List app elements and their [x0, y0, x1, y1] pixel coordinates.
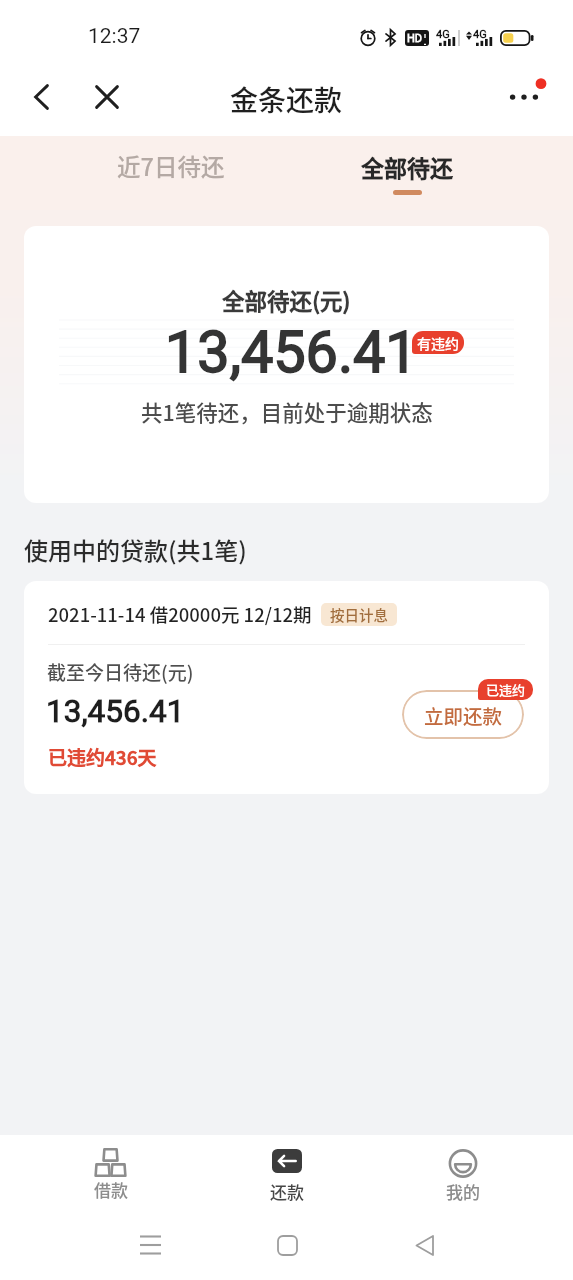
- button[interactable]: Back: [404, 1225, 444, 1265]
- staticText: 4G: [436, 28, 450, 41]
- staticText: 已违约436天: [48, 743, 157, 771]
- staticText: 借款: [94, 1177, 128, 1202]
- button[interactable]: Recents: [130, 1225, 170, 1265]
- button[interactable]: 借款: [22, 1135, 199, 1215]
- staticText: 共1笔待还，目前处于逾期状态: [141, 396, 433, 427]
- button[interactable]: 近7日待还: [57, 146, 285, 186]
- button[interactable]: More options: [500, 75, 546, 121]
- staticText: 12:37: [88, 24, 141, 49]
- staticText: 13,456.41: [165, 319, 418, 386]
- staticText: 按日计息: [330, 604, 388, 625]
- staticText: 13,456.41: [46, 693, 185, 730]
- staticText: 使用中的贷款(共1笔): [24, 532, 247, 567]
- button[interactable]: Back: [19, 75, 63, 119]
- staticText: 4G: [473, 28, 487, 41]
- button[interactable]: 我的: [375, 1135, 551, 1215]
- staticText: 金条还款: [230, 79, 343, 120]
- button[interactable]: 立即还款: [402, 690, 524, 739]
- staticText: 我的: [446, 1179, 480, 1204]
- button[interactable]: 还款: [199, 1135, 375, 1215]
- staticText: 还款: [270, 1179, 304, 1204]
- staticText: 有违约: [417, 333, 459, 353]
- button[interactable]: Home: [267, 1225, 307, 1265]
- staticText: HD: [407, 32, 423, 45]
- staticText: 立即还款: [424, 701, 503, 729]
- staticText: 已违约: [486, 680, 526, 699]
- staticText: 截至今日待还(元): [47, 658, 194, 686]
- staticText: 全部待还(元): [222, 284, 351, 317]
- staticText: 近7日待还: [117, 149, 225, 183]
- button[interactable]: 全部待还: [293, 150, 521, 200]
- staticText: 2021-11-14 借20000元 12/12期: [48, 601, 312, 628]
- button[interactable]: Close: [85, 75, 129, 119]
- staticText: 全部待还: [361, 150, 453, 183]
